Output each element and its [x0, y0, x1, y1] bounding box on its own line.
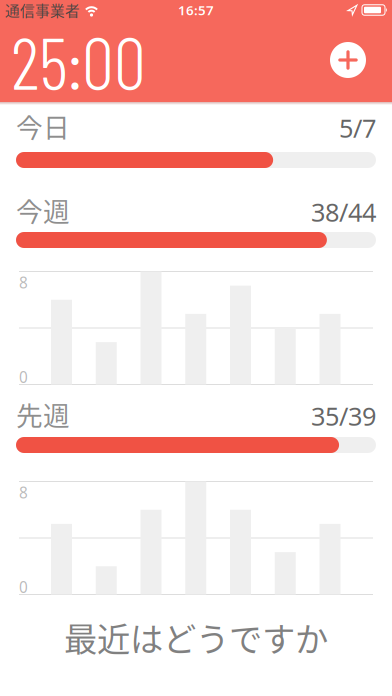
staticText: 最近はどうですか	[64, 613, 328, 661]
staticText: 16:57	[178, 1, 214, 19]
staticText: 8	[19, 482, 28, 503]
staticText: 先週	[16, 395, 70, 433]
staticText: 25:00	[11, 18, 146, 104]
staticText: 通信事業者	[5, 0, 80, 21]
staticText: 8	[19, 272, 28, 293]
staticText: 今日	[16, 107, 70, 145]
button[interactable]: Add	[330, 42, 366, 78]
staticText: 38/44	[311, 195, 376, 229]
staticText: 35/39	[311, 399, 376, 433]
staticText: 0	[19, 577, 28, 597]
staticText: 5/7	[339, 111, 376, 145]
staticText: 今週	[16, 191, 70, 229]
staticText: 0	[19, 367, 28, 387]
